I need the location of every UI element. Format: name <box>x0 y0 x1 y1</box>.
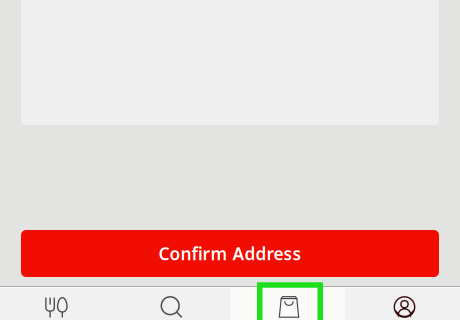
button[interactable]: Orders <box>230 286 345 320</box>
button[interactable]: Profile <box>345 286 460 320</box>
button[interactable]: Search <box>115 286 230 320</box>
button[interactable]: Restaurants <box>0 286 115 320</box>
button[interactable]: Confirm Address <box>21 230 439 277</box>
staticText: Confirm Address <box>158 242 301 265</box>
